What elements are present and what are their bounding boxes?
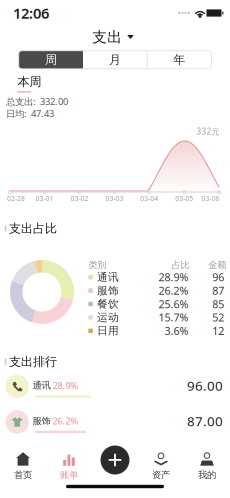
staticText: 03-01	[36, 194, 54, 203]
staticText: 运动	[97, 311, 119, 324]
staticText: 52	[212, 310, 224, 324]
staticText: 3.6%	[164, 324, 188, 338]
button[interactable]: 我的	[185, 449, 229, 483]
button[interactable]: 支出	[84, 23, 142, 51]
staticText: 类别	[88, 259, 106, 271]
button[interactable]: 年	[147, 51, 211, 69]
staticText: 通讯	[97, 271, 119, 284]
staticText: 通讯	[33, 380, 51, 391]
staticText: 28.9%	[52, 379, 78, 392]
staticText: 12:06	[13, 3, 49, 23]
staticText: 首页	[14, 469, 32, 481]
staticText: 03-05	[175, 194, 193, 203]
button[interactable]: 周	[19, 51, 83, 69]
staticText: 12	[212, 324, 224, 338]
staticText: 我的	[198, 469, 216, 481]
staticText: 服饰	[33, 415, 51, 427]
button[interactable]: 服饰	[0, 406, 230, 442]
staticText: 03-04	[140, 194, 158, 203]
staticText: 周	[45, 52, 57, 67]
button[interactable]: 通讯	[0, 370, 230, 406]
staticText: 总支出: 332.00	[6, 95, 68, 108]
staticText: 本周	[18, 74, 42, 89]
staticText: 26.2%	[158, 283, 188, 298]
staticText: 日用	[97, 324, 119, 337]
button[interactable]: 首页	[1, 449, 45, 483]
staticText: 87	[212, 283, 224, 298]
button[interactable]: Add	[98, 443, 132, 477]
staticText: 金额	[208, 259, 226, 271]
button[interactable]: 资产	[139, 449, 183, 483]
staticText: 96.00	[187, 377, 223, 394]
staticText: 年	[173, 52, 185, 67]
staticText: 87.00	[187, 412, 223, 430]
staticText: 02-28	[7, 194, 25, 203]
button[interactable]: 月	[83, 51, 147, 69]
staticText: 账单	[60, 469, 78, 481]
staticText: 96	[212, 270, 224, 284]
staticText: 15.7%	[158, 310, 188, 324]
staticText: 03-03	[105, 194, 123, 203]
staticText: 26.2%	[52, 415, 78, 427]
staticText: 85	[212, 297, 224, 311]
button[interactable]: 账单	[47, 449, 91, 483]
staticText: 28.9%	[158, 270, 188, 284]
staticText: 日均: 47.43	[6, 107, 54, 120]
staticText: 332元	[196, 126, 219, 137]
staticText: 03-02	[70, 194, 88, 203]
staticText: 支出	[92, 28, 122, 46]
staticText: 25.6%	[158, 297, 188, 311]
staticText: 支出排行	[9, 354, 57, 369]
staticText: 服饰	[97, 284, 119, 297]
staticText: 资产	[152, 469, 170, 481]
staticText: 月	[109, 52, 121, 67]
staticText: 03-06	[202, 194, 220, 203]
staticText: 餐饮	[97, 297, 119, 310]
staticText: 支出占比	[9, 221, 57, 236]
staticText: 占比	[171, 259, 189, 271]
